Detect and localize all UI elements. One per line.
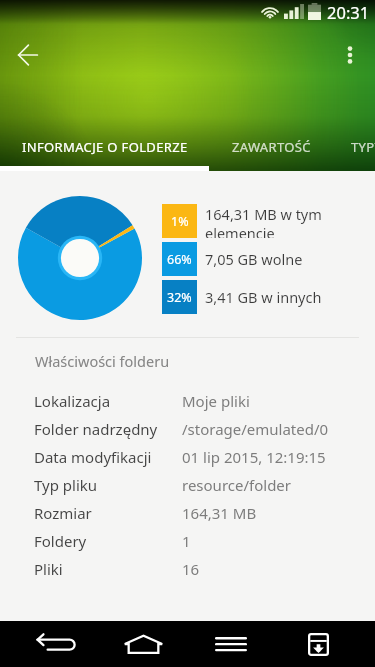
button[interactable]: Typ pliku (0, 471, 375, 499)
button[interactable]: Pliki (0, 555, 375, 583)
staticText: 32% (167, 289, 192, 306)
button[interactable]: 1% (162, 204, 197, 238)
button[interactable]: Lokalizacja (0, 387, 375, 415)
button[interactable]: Rozmiar (0, 499, 375, 527)
staticText: 66% (167, 251, 192, 268)
staticText: INFORMACJE O FOLDERZE (22, 138, 188, 156)
staticText: Folder nadrzędny (34, 419, 182, 439)
button[interactable]: 66% (162, 242, 197, 276)
staticText: 3,41 GB w innych (205, 287, 322, 307)
button[interactable]: Data modyfikacji (0, 443, 375, 471)
button[interactable]: Recent apps (201, 621, 261, 667)
staticText: 16 (182, 559, 200, 579)
staticText: resource/folder (182, 475, 292, 495)
button[interactable]: Foldery (0, 527, 375, 555)
staticText: 1% (171, 213, 189, 230)
staticText: ZAWARTOŚĆ (232, 138, 311, 156)
staticText: Moje pliki (182, 391, 250, 411)
button[interactable]: More options (328, 33, 372, 77)
button[interactable]: 32% (162, 280, 197, 314)
staticText: /storage/emulated/0 (182, 419, 329, 439)
staticText: Lokalizacja (34, 391, 182, 411)
staticText: Foldery (34, 531, 182, 551)
button[interactable]: Folder nadrzędny (0, 415, 375, 443)
staticText: Pliki (34, 559, 182, 579)
button[interactable]: ZAWARTOŚĆ (209, 123, 334, 171)
staticText: 164,31 MB w tym elemencie (205, 204, 325, 238)
button[interactable]: Home (110, 621, 177, 667)
button[interactable]: TYPY PLIKÓW (334, 123, 375, 171)
staticText: Rozmiar (34, 503, 182, 523)
staticText: TYPY PLIKÓW (351, 138, 375, 156)
staticText: 164,31 MB (182, 503, 257, 523)
staticText: Data modyfikacji (34, 447, 182, 467)
staticText: 20:31 (327, 1, 370, 23)
button[interactable]: Back (23, 621, 89, 667)
button[interactable]: INFORMACJE O FOLDERZE (0, 123, 209, 171)
button[interactable]: Hide keyboard (294, 621, 343, 667)
staticText: 1 (182, 531, 191, 551)
staticText: Typ pliku (34, 475, 182, 495)
staticText: 01 lip 2015, 12:19:15 (182, 447, 326, 467)
button[interactable]: Back (6, 33, 50, 77)
staticText: Właściwości folderu (35, 351, 170, 371)
staticText: 7,05 GB wolne (205, 249, 303, 269)
